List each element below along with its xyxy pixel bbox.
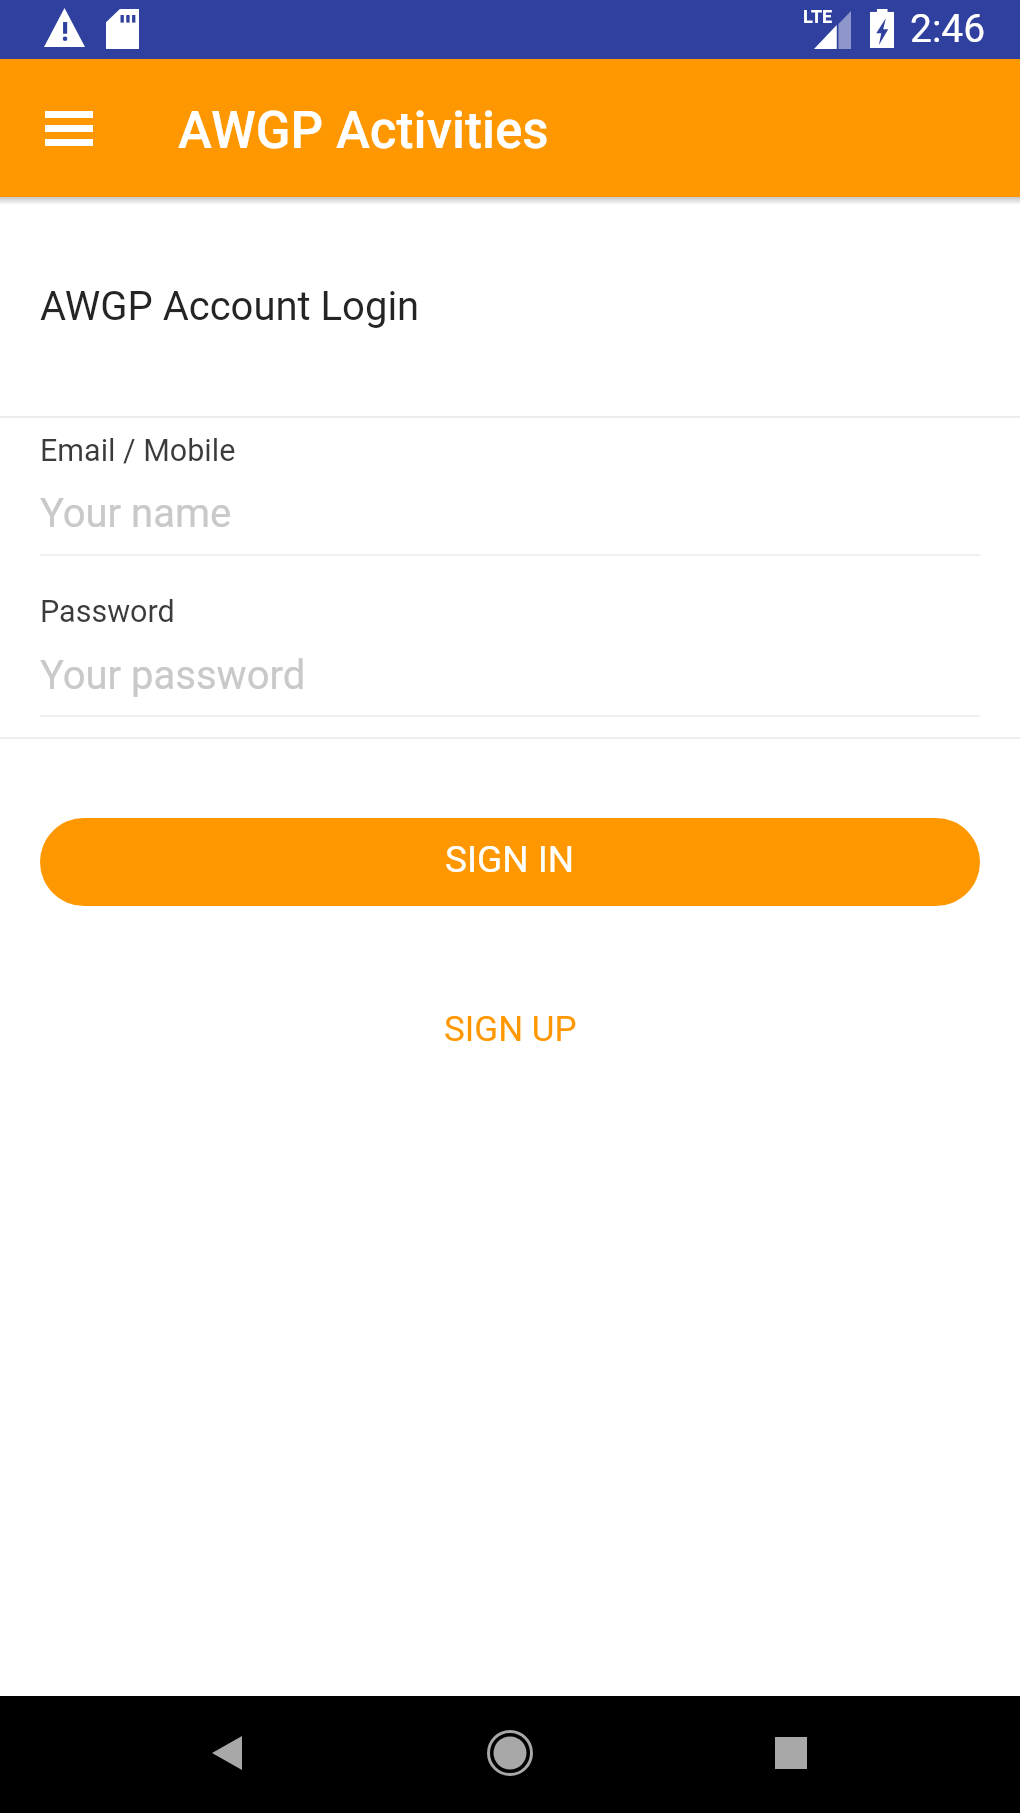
button[interactable]: SIGN IN <box>40 818 980 906</box>
button[interactable]: Home <box>460 1703 560 1803</box>
staticText: LTE <box>803 6 833 27</box>
button[interactable]: Back <box>177 1703 277 1803</box>
staticText: SIGN IN <box>445 838 575 881</box>
staticText: Password <box>40 594 175 630</box>
staticText: AWGP Activities <box>178 101 549 161</box>
button[interactable]: SIGN UP <box>310 985 710 1073</box>
staticText: Email / Mobile <box>40 433 236 469</box>
button[interactable]: Open navigation menu <box>33 92 105 164</box>
staticText: SIGN UP <box>444 1009 577 1050</box>
staticText: Your name <box>40 490 232 537</box>
staticText: Your password <box>40 652 306 699</box>
staticText: AWGP Account Login <box>40 283 420 330</box>
staticText: 2:46 <box>910 6 986 52</box>
button[interactable]: Recent apps <box>741 1703 841 1803</box>
